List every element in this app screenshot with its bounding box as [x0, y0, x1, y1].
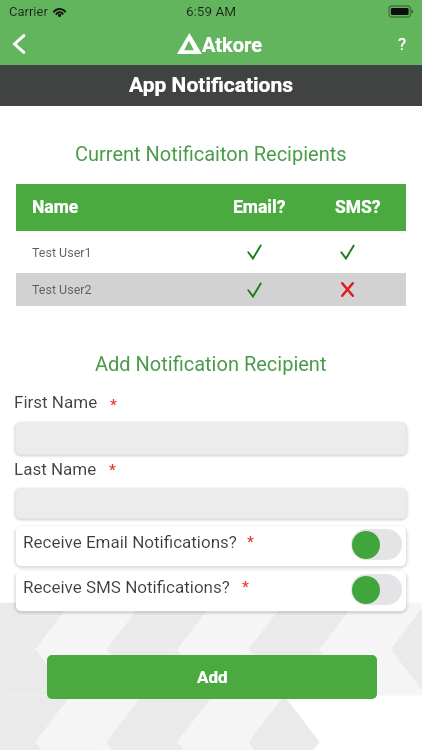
staticText: Receive SMS Notifications?: [23, 577, 230, 597]
button[interactable]: Receive Email Notifications?: [16, 526, 406, 566]
staticText: *: [247, 533, 254, 551]
staticText: Receive Email Notifications?: [23, 532, 237, 552]
staticText: SMS?: [335, 197, 381, 218]
button[interactable]: Back: [0, 24, 40, 64]
staticText: Test User2: [32, 282, 92, 297]
staticText: Add Notification Recipient: [95, 352, 327, 375]
staticText: *: [109, 461, 116, 479]
staticText: Carrier: [9, 4, 48, 19]
staticText: *: [242, 578, 249, 596]
staticText: App Notifications: [129, 73, 294, 98]
staticText: Email?: [233, 197, 286, 218]
staticText: First Name: [14, 392, 98, 412]
staticText: *: [110, 396, 117, 414]
button[interactable]: Receive SMS Notifications?: [16, 571, 406, 611]
button[interactable]: Add: [47, 655, 377, 699]
staticText: Current Notificaiton Recipients: [75, 142, 347, 165]
staticText: Test User1: [32, 245, 92, 260]
button[interactable]: Test User2: [16, 273, 406, 306]
button[interactable]: Help: [382, 24, 422, 64]
button[interactable]: Name: [16, 184, 406, 231]
staticText: Atkore: [202, 33, 262, 56]
staticText: Name: [32, 197, 79, 218]
button[interactable]: Test User1: [16, 231, 406, 273]
staticText: Last Name: [14, 459, 97, 479]
staticText: 6:59 AM: [186, 3, 236, 19]
staticText: ?: [398, 34, 407, 54]
staticText: Add: [197, 667, 228, 687]
